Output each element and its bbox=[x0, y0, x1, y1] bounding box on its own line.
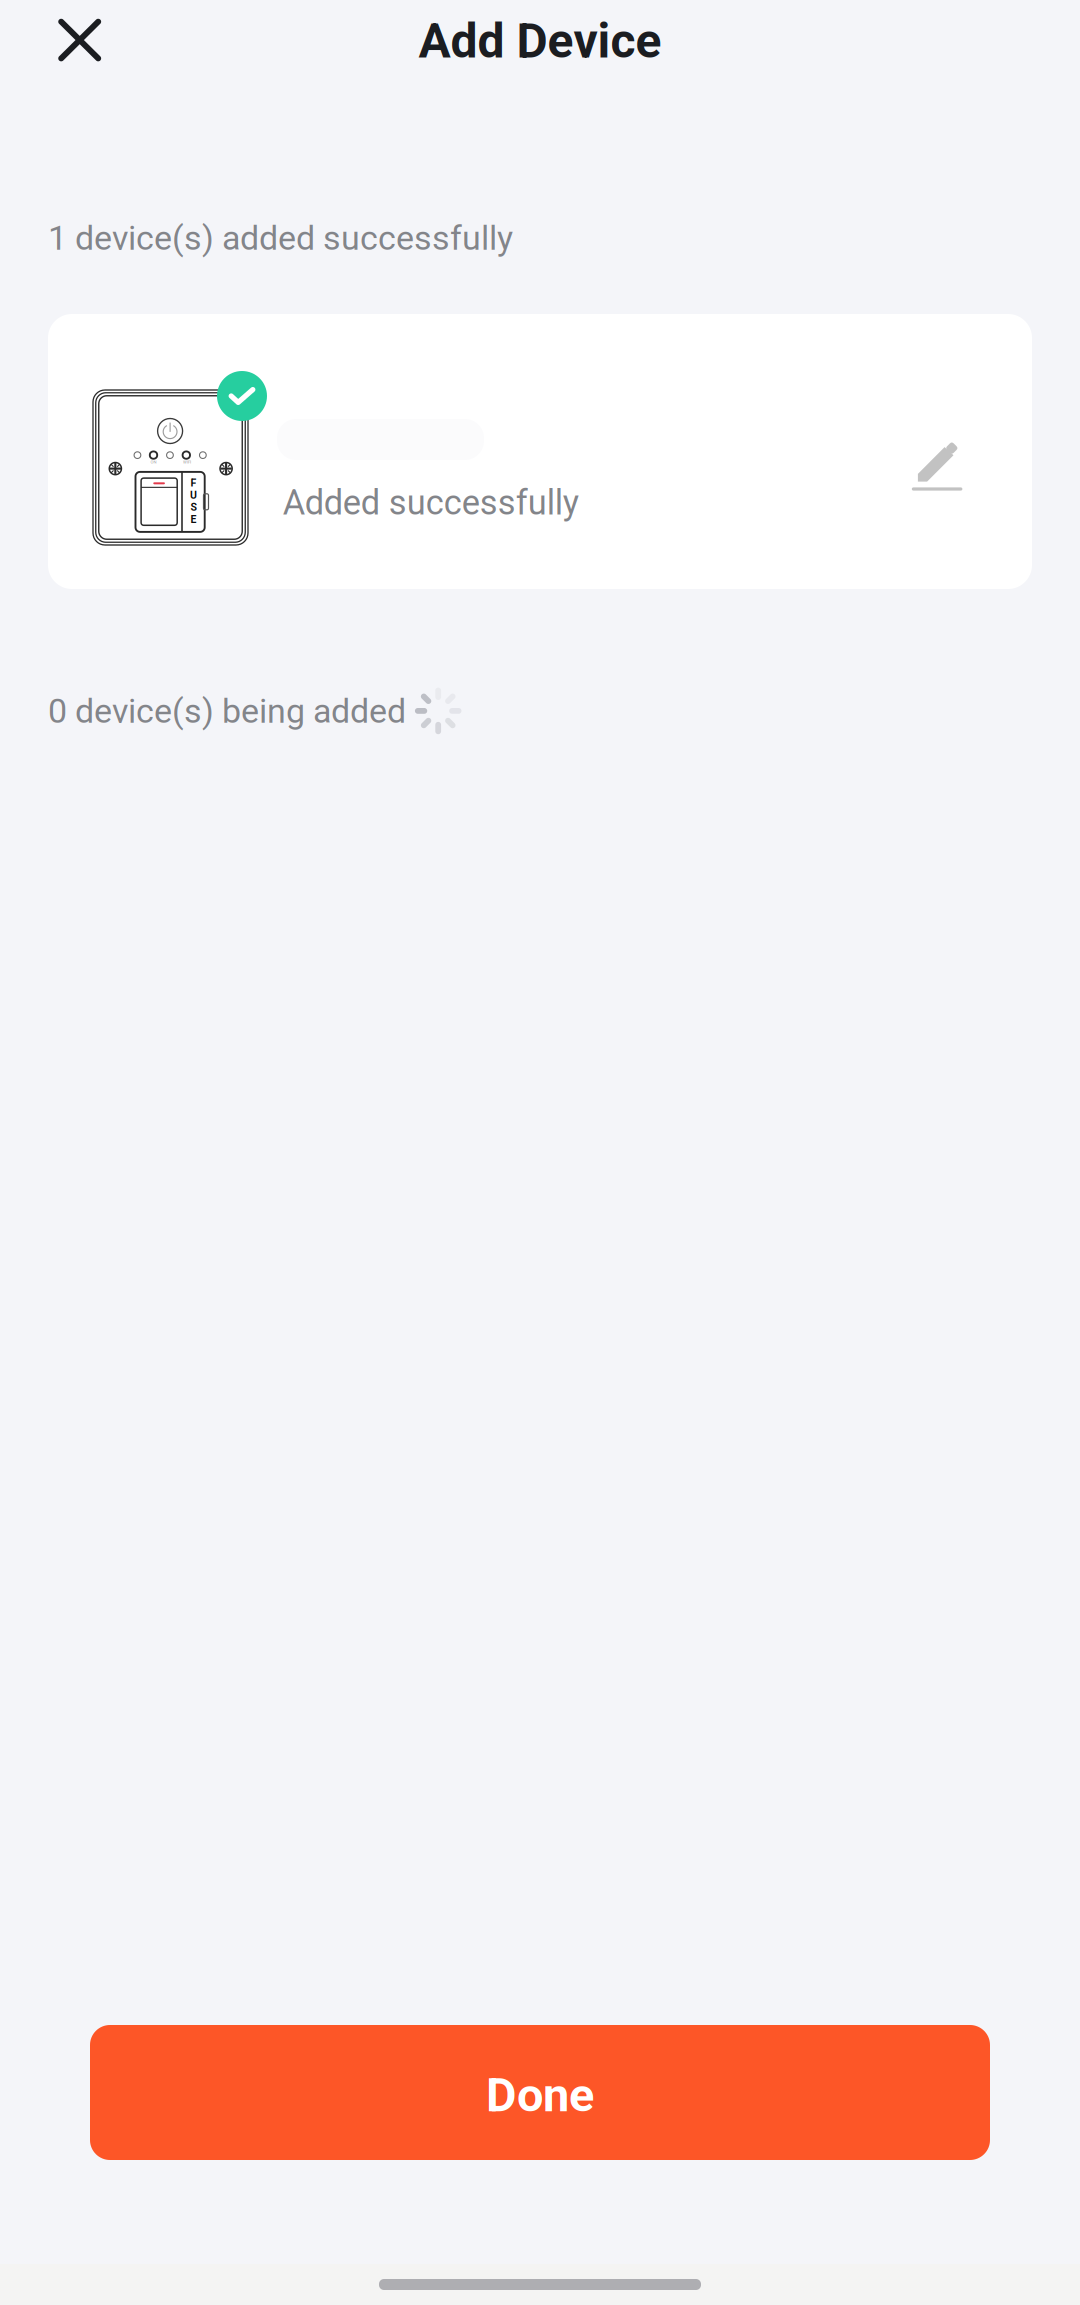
staticText: ON bbox=[150, 459, 156, 464]
staticText: S bbox=[190, 501, 196, 513]
staticText: 1 device(s) added successfully bbox=[48, 218, 513, 258]
button[interactable]: Close bbox=[34, 0, 125, 85]
button[interactable]: ON bbox=[48, 314, 1032, 589]
staticText: F bbox=[190, 477, 196, 489]
staticText: U bbox=[190, 489, 197, 501]
staticText: E bbox=[190, 513, 196, 525]
staticText: Done bbox=[486, 2068, 594, 2123]
staticText: 0 device(s) being added bbox=[48, 691, 406, 731]
staticText: Added successfully bbox=[283, 483, 579, 523]
staticText: WIFI bbox=[183, 459, 191, 464]
button[interactable]: Done bbox=[90, 2025, 990, 2160]
staticText: Add Device bbox=[418, 13, 661, 69]
